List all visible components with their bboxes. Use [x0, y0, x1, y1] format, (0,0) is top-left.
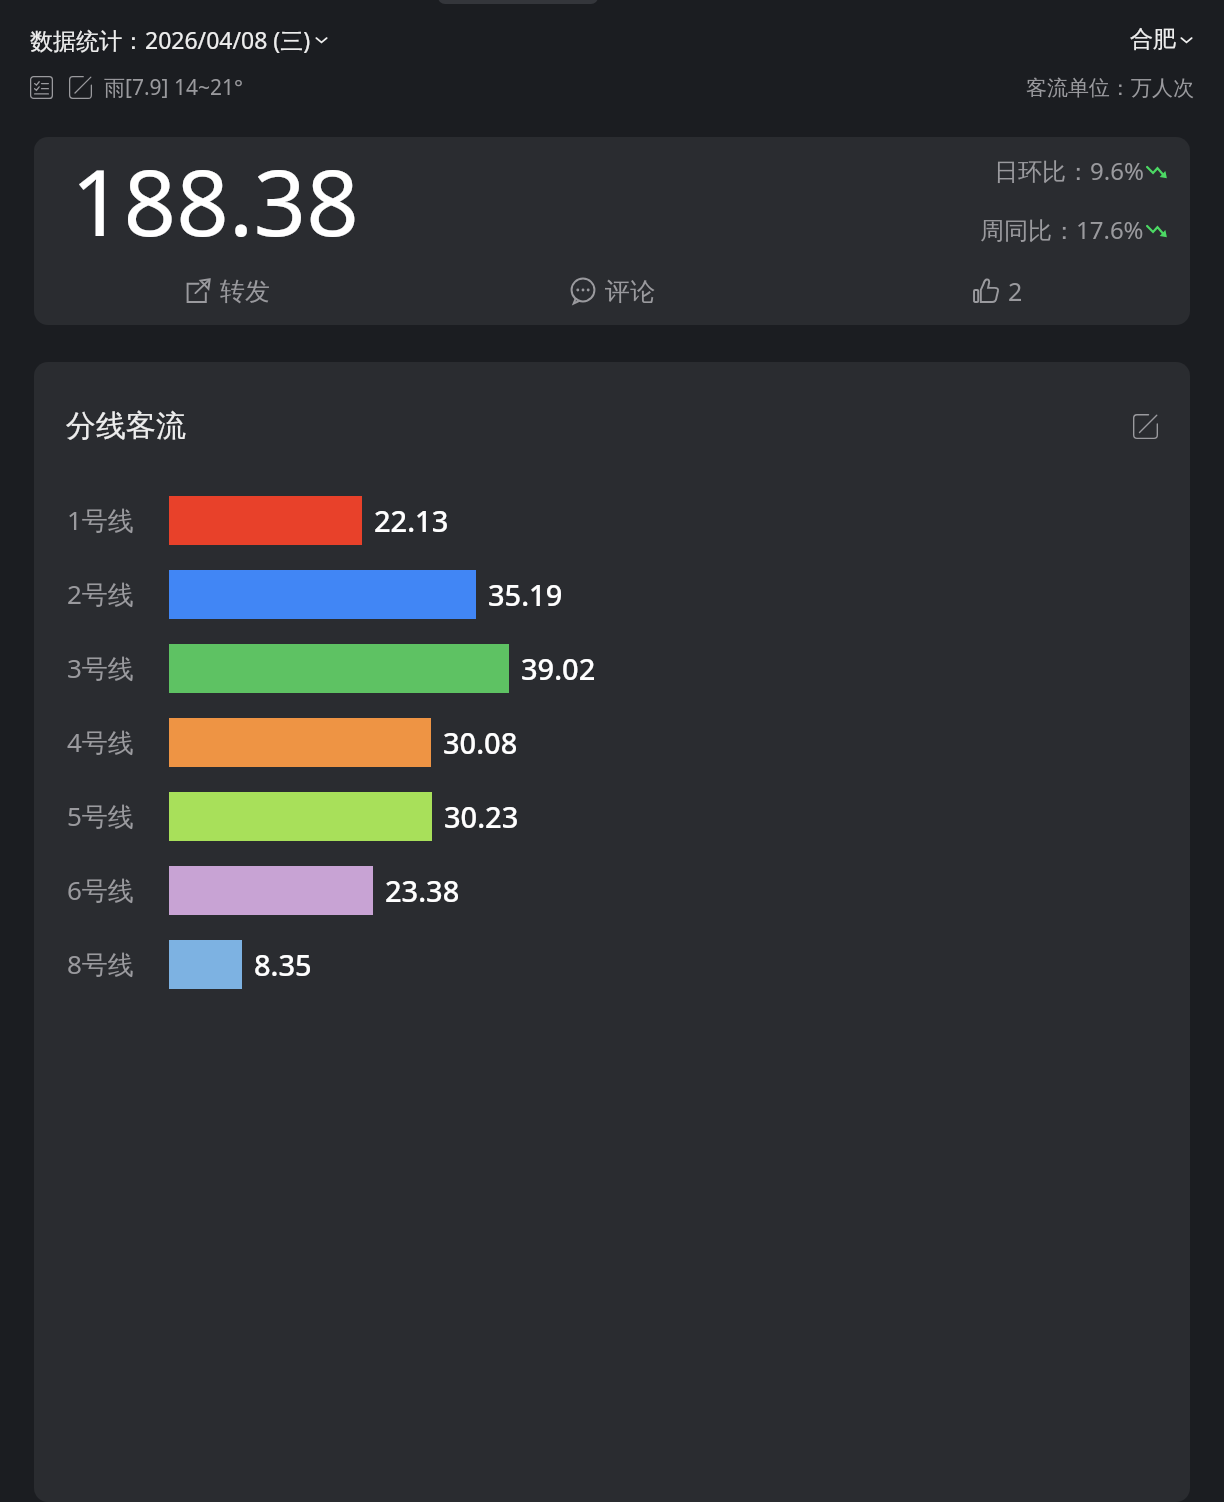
staticText: 23.38 [385, 871, 460, 910]
staticText: 39.02 [521, 649, 596, 688]
staticText: 35.19 [488, 575, 563, 614]
button[interactable]: 6号线 [34, 853, 1190, 927]
staticText: 数据统计：2026/04/08 (三) [30, 24, 311, 55]
staticText: 8号线 [67, 946, 159, 982]
staticText: 雨[7.9] 14~21° [104, 73, 243, 102]
staticText: 8.35 [254, 945, 312, 984]
button[interactable]: 1号线 [34, 483, 1190, 557]
staticText: 1号线 [67, 502, 159, 538]
staticText: 4号线 [67, 724, 159, 760]
staticText: 分线客流 [66, 407, 186, 445]
button[interactable]: 3号线 [34, 631, 1190, 705]
button[interactable]: 评论 [420, 263, 805, 319]
button[interactable]: 188.38 [34, 137, 1190, 325]
staticText: 30.08 [443, 723, 518, 762]
staticText: 周同比：17.6% [980, 213, 1144, 246]
button[interactable]: 2 [805, 263, 1190, 319]
staticText: 2 [1008, 274, 1023, 308]
staticText: 2号线 [67, 576, 159, 612]
staticText: 22.13 [374, 501, 449, 540]
button[interactable]: 8号线 [34, 927, 1190, 1001]
button[interactable]: Edit chart [1133, 414, 1158, 439]
staticText: 3号线 [67, 650, 159, 686]
button[interactable]: Checklist [30, 76, 53, 99]
button[interactable]: 5号线 [34, 779, 1190, 853]
button[interactable]: 转发 [34, 263, 420, 319]
staticText: 转发 [220, 276, 270, 307]
button[interactable]: 合肥 [1130, 25, 1194, 54]
staticText: 30.23 [444, 797, 519, 836]
button[interactable]: 4号线 [34, 705, 1190, 779]
button[interactable]: 2号线 [34, 557, 1190, 631]
button[interactable]: Edit [69, 76, 92, 99]
button[interactable]: 数据统计：2026/04/08 (三) [30, 24, 329, 55]
staticText: 评论 [605, 276, 655, 307]
staticText: 合肥 [1130, 25, 1176, 54]
staticText: 6号线 [67, 872, 159, 908]
staticText: 客流单位：万人次 [1026, 75, 1194, 101]
staticText: 日环比：9.6% [994, 154, 1144, 187]
staticText: 188.38 [71, 138, 359, 263]
staticText: 5号线 [67, 798, 159, 834]
